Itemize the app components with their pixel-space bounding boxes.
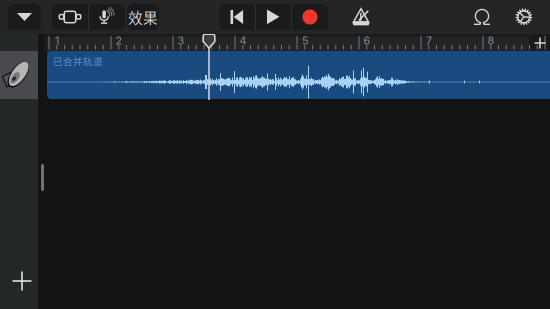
button[interactable]: Track view bbox=[52, 4, 88, 30]
button[interactable]: Record bbox=[292, 4, 328, 30]
button[interactable]: Settings bbox=[511, 4, 537, 30]
button[interactable]: Add section bbox=[530, 34, 550, 52]
button[interactable]: My Songs bbox=[8, 4, 41, 30]
button[interactable]: Loop browser bbox=[469, 4, 495, 30]
staticText: 5 bbox=[302, 34, 308, 47]
staticText: 效果 bbox=[128, 6, 158, 28]
staticText: 已合并轨道 bbox=[53, 54, 103, 68]
staticText: 1 bbox=[55, 34, 59, 47]
button[interactable]: Play bbox=[256, 4, 291, 30]
button[interactable]: Recording settings bbox=[89, 4, 125, 30]
button[interactable]: Metronome bbox=[348, 4, 374, 30]
staticText: 6 bbox=[363, 34, 370, 47]
button[interactable]: Audio Recorder track bbox=[0, 51, 38, 99]
button[interactable]: 效果 bbox=[127, 4, 159, 30]
staticText: 7 bbox=[426, 34, 432, 47]
staticText: 2 bbox=[115, 34, 122, 47]
staticText: 3 bbox=[177, 34, 184, 47]
staticText: 4 bbox=[239, 34, 246, 47]
staticText: 8 bbox=[487, 34, 494, 47]
button[interactable]: Add a track bbox=[3, 262, 41, 300]
button[interactable]: Rewind to start bbox=[219, 4, 255, 30]
